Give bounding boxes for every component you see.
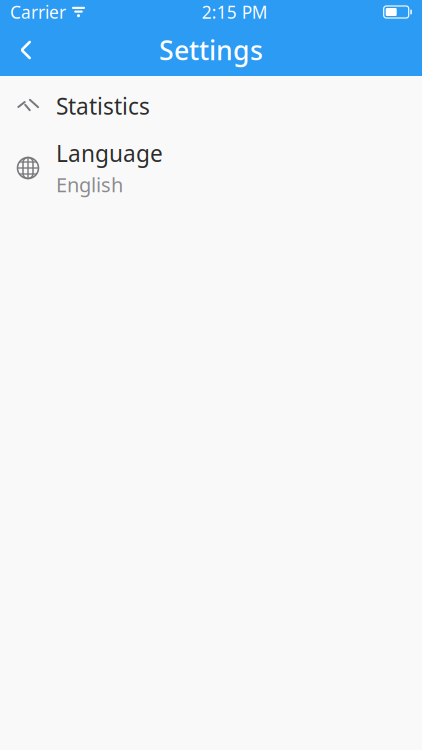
staticText: English (56, 171, 123, 198)
button[interactable]: Statistics (0, 76, 422, 136)
staticText: Carrier (10, 0, 66, 23)
staticText: 2:15 PM (202, 0, 268, 23)
staticText: Statistics (56, 91, 150, 121)
button[interactable]: Back (0, 24, 52, 76)
staticText: Settings (159, 32, 263, 68)
button[interactable]: Language (0, 136, 422, 200)
staticText: Language (56, 138, 163, 168)
